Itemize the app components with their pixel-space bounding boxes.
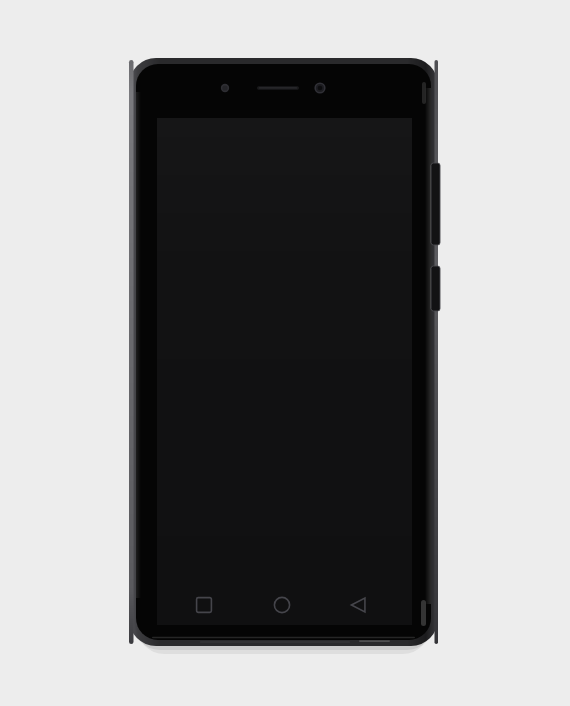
button[interactable]: Volume [427, 163, 441, 245]
button[interactable]: Home [266, 589, 298, 621]
button[interactable]: Power [427, 266, 441, 311]
button[interactable]: Back [343, 589, 375, 621]
button[interactable]: Recent apps [188, 589, 220, 621]
